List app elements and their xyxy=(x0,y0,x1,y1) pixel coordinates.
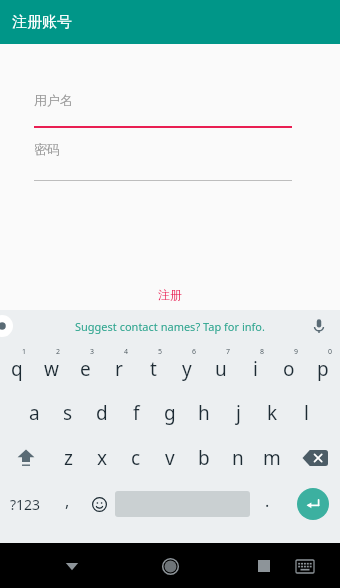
staticText: g xyxy=(164,400,176,426)
staticText: c xyxy=(131,445,141,471)
staticText: y xyxy=(182,356,192,382)
staticText: m xyxy=(263,445,281,471)
staticText: 3 xyxy=(90,347,95,357)
staticText: o xyxy=(283,356,295,382)
button[interactable]: Backspace xyxy=(289,435,340,480)
button[interactable]: a xyxy=(17,390,51,435)
staticText: , xyxy=(65,490,70,512)
button[interactable]: 3 xyxy=(68,342,102,390)
staticText: 用户名 xyxy=(34,92,73,108)
staticText: 注册账号 xyxy=(12,13,72,32)
button[interactable]: Shift xyxy=(0,435,51,480)
staticText: 6 xyxy=(192,347,197,357)
button[interactable]: d xyxy=(85,390,119,435)
staticText: s xyxy=(63,400,73,426)
button[interactable]: Search xyxy=(0,315,13,337)
button[interactable]: Emoji xyxy=(83,480,115,528)
staticText: t xyxy=(150,356,157,382)
staticText: 5 xyxy=(158,347,163,357)
staticText: h xyxy=(198,400,210,426)
button[interactable]: c xyxy=(119,435,153,480)
button[interactable]: , xyxy=(51,480,83,528)
button[interactable]: Suggest contact names? Tap for info. xyxy=(75,319,265,334)
button[interactable]: Hide keyboard xyxy=(55,549,89,583)
staticText: w xyxy=(44,356,59,382)
staticText: q xyxy=(11,356,23,382)
button[interactable]: 注册 xyxy=(130,282,210,306)
staticText: v xyxy=(165,445,175,471)
staticText: 0 xyxy=(328,347,333,357)
button[interactable]: z xyxy=(51,435,85,480)
staticText: j xyxy=(236,400,241,426)
staticText: 密码 xyxy=(34,141,60,157)
button[interactable]: 密码 xyxy=(34,141,292,181)
button[interactable]: l xyxy=(289,390,323,435)
staticText: n xyxy=(232,445,244,471)
staticText: z xyxy=(64,445,73,471)
staticText: . xyxy=(265,490,270,512)
staticText: 1 xyxy=(22,347,27,357)
staticText: e xyxy=(80,356,91,382)
button[interactable]: Enter xyxy=(297,488,329,520)
staticText: 注册 xyxy=(158,287,182,302)
staticText: 8 xyxy=(260,347,265,357)
button[interactable]: x xyxy=(85,435,119,480)
staticText: b xyxy=(198,445,210,471)
staticText: k xyxy=(267,400,278,426)
button[interactable]: h xyxy=(187,390,221,435)
staticText: r xyxy=(115,356,123,382)
staticText: 9 xyxy=(294,347,299,357)
staticText: a xyxy=(29,400,40,426)
button[interactable]: 5 xyxy=(136,342,170,390)
staticText: x xyxy=(97,445,108,471)
button[interactable]: 6 xyxy=(170,342,204,390)
button[interactable]: s xyxy=(51,390,85,435)
button[interactable]: 9 xyxy=(272,342,306,390)
staticText: l xyxy=(304,400,309,426)
button[interactable]: 7 xyxy=(204,342,238,390)
button[interactable]: 8 xyxy=(238,342,272,390)
button[interactable]: 1 xyxy=(0,342,34,390)
button[interactable]: g xyxy=(153,390,187,435)
staticText: 4 xyxy=(124,347,129,357)
button[interactable]: Home xyxy=(153,549,187,583)
staticText: p xyxy=(317,356,329,382)
button[interactable]: . xyxy=(250,480,285,528)
button[interactable]: Switch keyboard xyxy=(290,551,320,581)
button[interactable]: k xyxy=(255,390,289,435)
staticText: 2 xyxy=(56,347,61,357)
button[interactable]: b xyxy=(187,435,221,480)
button[interactable]: n xyxy=(221,435,255,480)
button[interactable]: 用户名 xyxy=(34,92,292,128)
button[interactable]: 2 xyxy=(34,342,68,390)
staticText: f xyxy=(133,400,140,426)
button[interactable]: ?123 xyxy=(0,480,51,528)
button[interactable]: Recent apps xyxy=(248,550,280,582)
button[interactable]: f xyxy=(119,390,153,435)
button[interactable]: j xyxy=(221,390,255,435)
button[interactable]: v xyxy=(153,435,187,480)
staticText: ?123 xyxy=(10,495,41,514)
staticText: i xyxy=(253,356,258,382)
button[interactable]: m xyxy=(255,435,289,480)
staticText: d xyxy=(96,400,108,426)
staticText: 7 xyxy=(226,347,231,357)
button[interactable]: 0 xyxy=(306,342,340,390)
staticText: u xyxy=(215,356,227,382)
button[interactable]: Voice input xyxy=(308,315,330,337)
button[interactable]: 4 xyxy=(102,342,136,390)
